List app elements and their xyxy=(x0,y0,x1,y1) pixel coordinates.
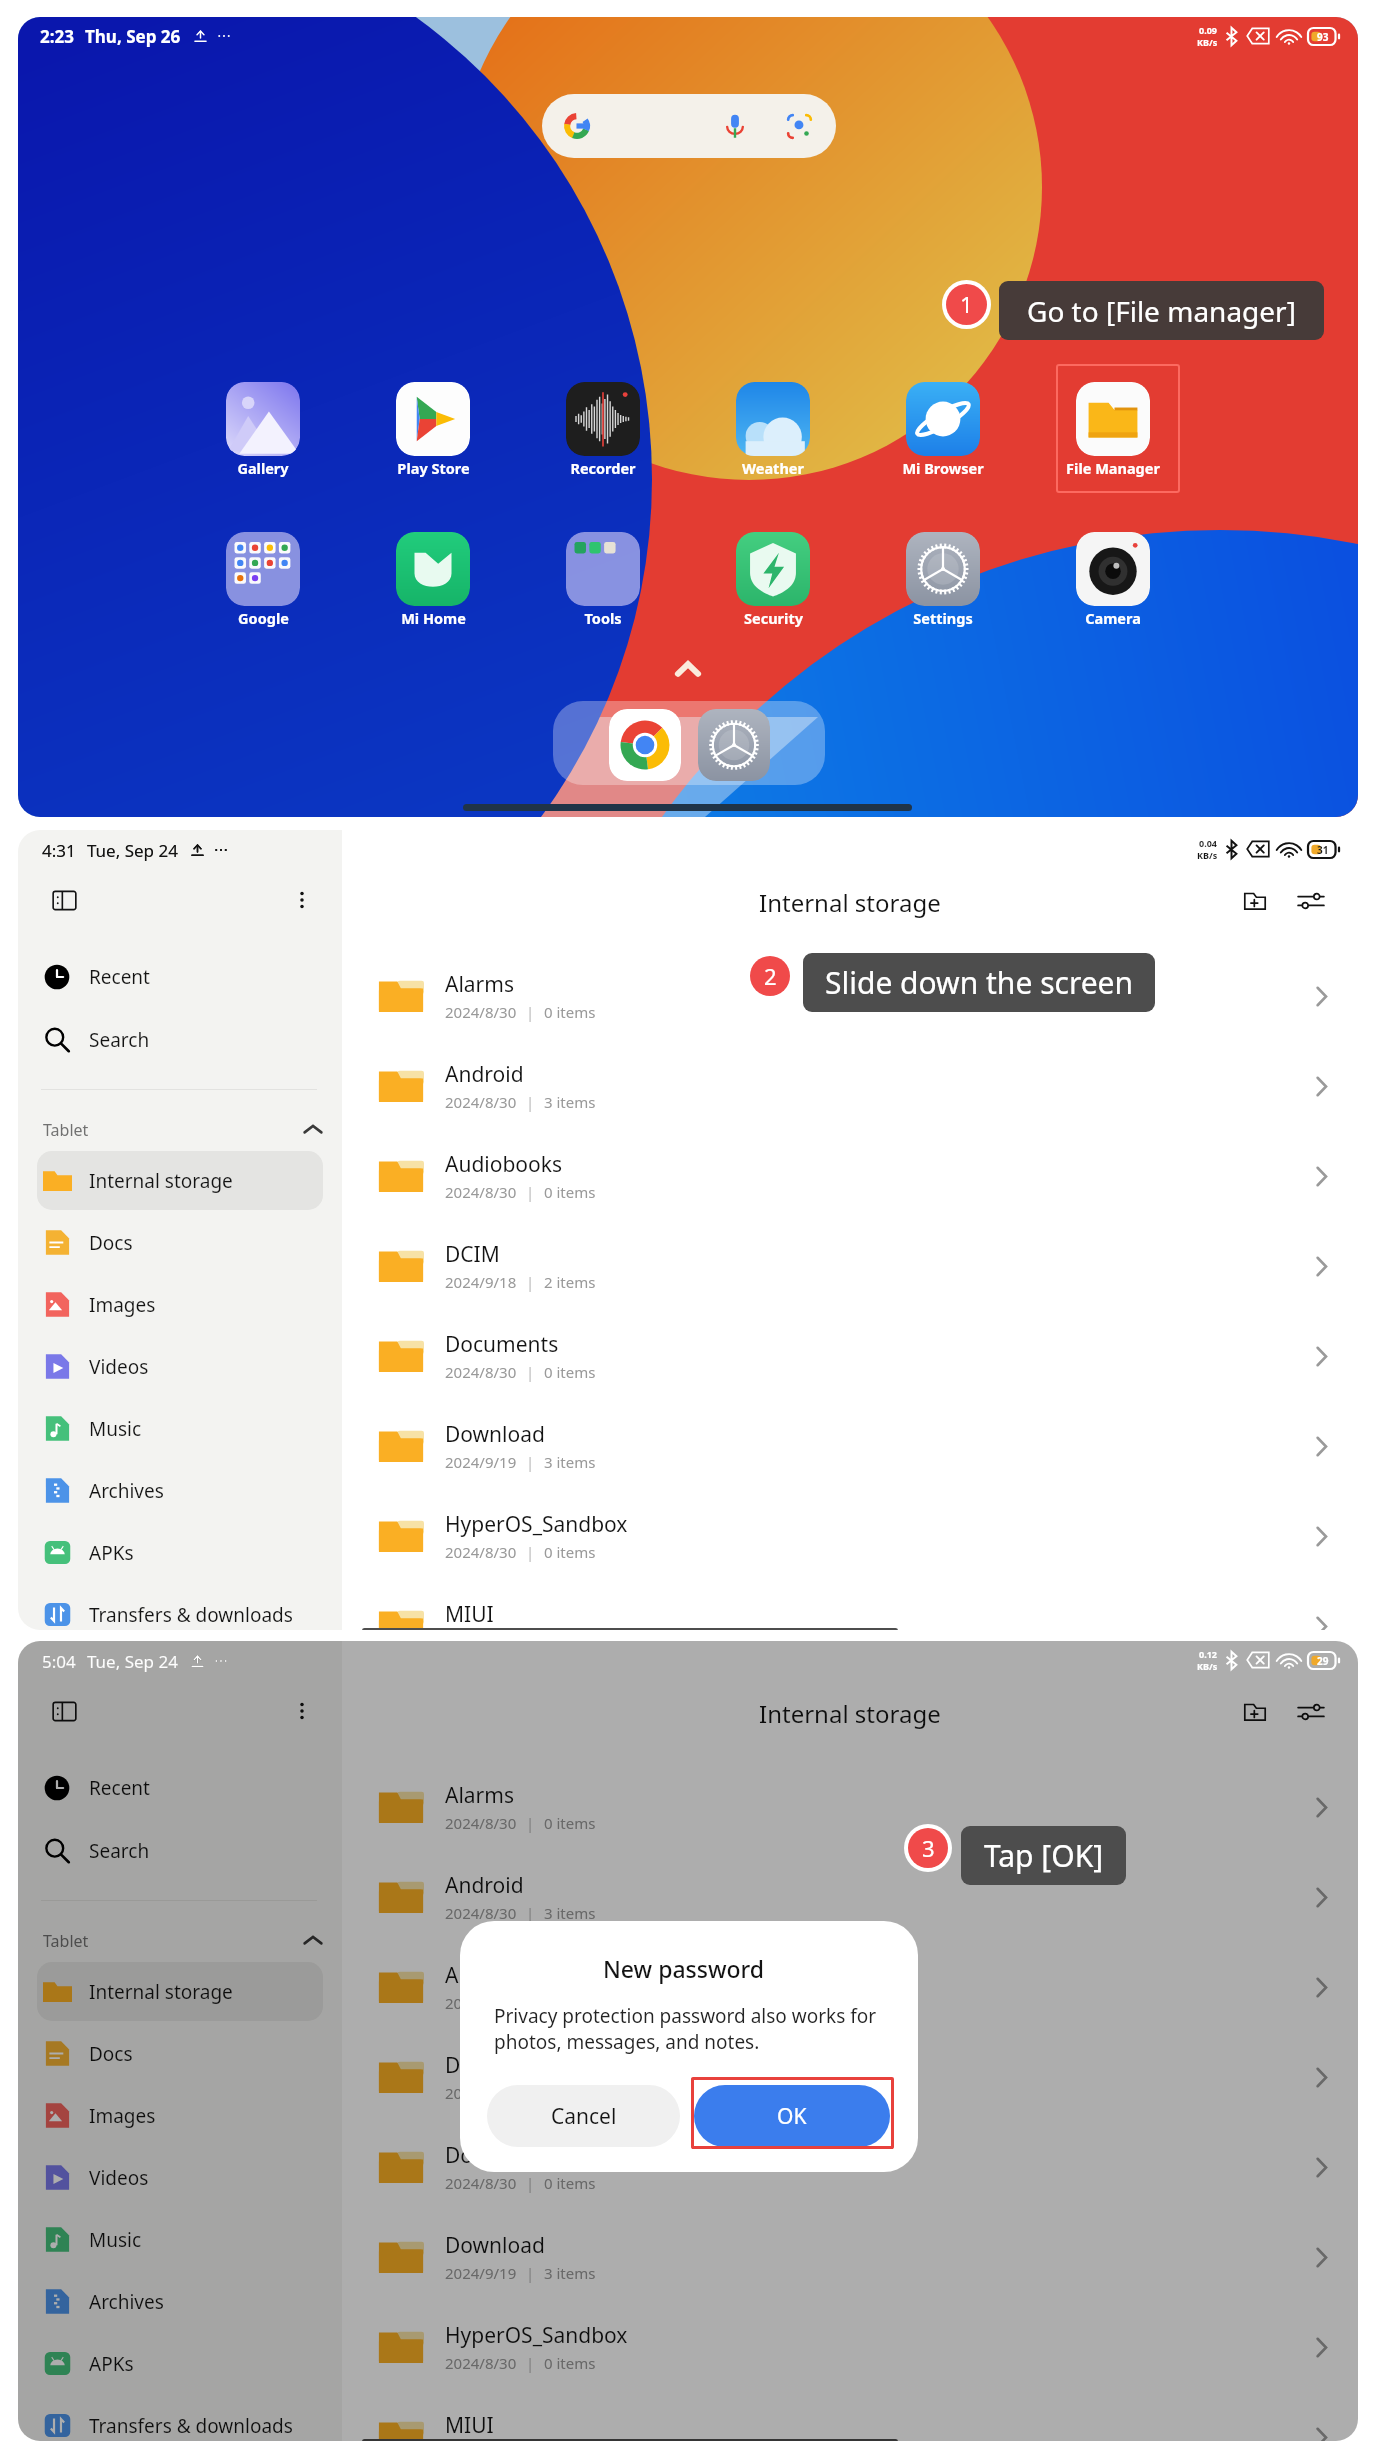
staticText: | xyxy=(526,1813,535,1833)
staticText: 93 xyxy=(1317,30,1329,44)
button[interactable]: Weather xyxy=(718,382,828,478)
button[interactable]: More options xyxy=(280,876,324,924)
button[interactable]: Sort options xyxy=(1287,1688,1335,1736)
staticText: | xyxy=(526,1092,535,1112)
button[interactable]: Internal storage xyxy=(37,1962,323,2021)
button[interactable]: New folder xyxy=(1231,877,1279,925)
button[interactable]: Archives xyxy=(37,2272,323,2331)
button[interactable]: Docs xyxy=(37,2024,323,2083)
button[interactable]: Settings xyxy=(888,532,998,628)
staticText: MIUI xyxy=(445,2411,494,2440)
button[interactable]: Tools xyxy=(548,532,658,628)
button[interactable]: Settings xyxy=(698,709,770,781)
staticText: 2024/9/19 xyxy=(445,2263,517,2283)
button[interactable]: HyperOS_Sandbox xyxy=(342,1491,1358,1581)
staticText: Android xyxy=(445,1060,524,1089)
staticText: KB/s xyxy=(1197,1660,1218,1672)
button[interactable]: Alarms xyxy=(342,951,1358,1041)
button[interactable]: Docs xyxy=(37,1213,323,1272)
staticText: | xyxy=(526,2263,535,2283)
staticText: APKs xyxy=(89,2351,134,2377)
staticText: Archives xyxy=(89,2289,164,2315)
button[interactable]: Alarms xyxy=(342,1762,1358,1852)
staticText: | xyxy=(526,2083,535,2103)
staticText: 2 items xyxy=(544,1272,596,1292)
button[interactable]: OK xyxy=(694,2085,890,2147)
button[interactable]: Download xyxy=(342,1401,1358,1491)
staticText: Android xyxy=(445,1871,524,1900)
button[interactable]: Videos xyxy=(37,1337,323,1396)
button[interactable]: Gallery xyxy=(208,382,318,478)
staticText: 2024/9/18 xyxy=(445,2083,517,2103)
staticText: Mi Browser xyxy=(902,458,984,478)
staticText: DCIM xyxy=(445,2051,500,2080)
button[interactable]: Transfers & downloads xyxy=(37,2396,323,2441)
button[interactable]: Documents xyxy=(342,1311,1358,1401)
button[interactable]: Archives xyxy=(37,1461,323,1520)
button[interactable]: APKs xyxy=(37,2334,323,2393)
button[interactable]: Google xyxy=(208,532,318,628)
button[interactable]: Mi Browser xyxy=(888,382,998,478)
staticText: Music xyxy=(89,2227,142,2253)
staticText: 0 items xyxy=(544,1182,596,1202)
button[interactable]: HyperOS_Sandbox xyxy=(342,2302,1358,2392)
button[interactable]: Audiobooks xyxy=(342,1131,1358,1221)
button[interactable]: Sort options xyxy=(1287,877,1335,925)
staticText: 3 xyxy=(922,1833,935,1863)
staticText: | xyxy=(526,2353,535,2373)
staticText: 4:31 xyxy=(42,839,76,862)
button[interactable]: Search xyxy=(37,1010,323,1070)
staticText: Internal storage xyxy=(89,1168,233,1194)
button[interactable]: Cancel xyxy=(487,2085,680,2147)
staticText: | xyxy=(526,1182,535,1202)
button[interactable]: DCIM xyxy=(342,2032,1358,2122)
staticText: Tools xyxy=(584,608,622,628)
staticText: 2024/8/30 xyxy=(445,1362,517,1382)
button[interactable]: Play Store xyxy=(378,382,488,478)
button[interactable]: Images xyxy=(37,2086,323,2145)
staticText: 0 items xyxy=(544,2173,596,2193)
button[interactable]: Chrome xyxy=(609,709,681,781)
button[interactable]: Music xyxy=(37,1399,323,1458)
button[interactable]: Images xyxy=(37,1275,323,1334)
button[interactable]: Internal storage xyxy=(37,1151,323,1210)
staticText: File Manager xyxy=(1066,458,1160,478)
button[interactable]: Google search xyxy=(542,94,836,158)
button[interactable]: Audiobooks xyxy=(342,1942,1358,2032)
button[interactable]: Documents xyxy=(342,2122,1358,2212)
button[interactable]: File Manager xyxy=(1058,382,1168,478)
button[interactable]: Toggle sidebar xyxy=(38,1687,90,1735)
button[interactable]: Toggle sidebar xyxy=(38,876,90,924)
button[interactable]: MIUI xyxy=(342,2392,1358,2441)
button[interactable]: Videos xyxy=(37,2148,323,2207)
staticText: Thu, Sep 26 xyxy=(85,25,181,48)
button[interactable]: Mi Home xyxy=(378,532,488,628)
button[interactable]: More options xyxy=(280,1687,324,1735)
staticText: Videos xyxy=(89,1354,149,1380)
staticText: 2024/8/30 xyxy=(445,1002,517,1022)
staticText: | xyxy=(526,1362,535,1382)
staticText: Audiobooks xyxy=(445,1961,563,1990)
staticText: Search xyxy=(89,1027,150,1053)
button[interactable]: Search xyxy=(37,1821,323,1881)
button[interactable]: Recent xyxy=(37,947,323,1007)
button[interactable]: New folder xyxy=(1231,1688,1279,1736)
staticText: | xyxy=(526,1993,535,2013)
button[interactable]: Security xyxy=(718,532,828,628)
button[interactable]: Android xyxy=(342,1852,1358,1942)
button[interactable]: MIUI xyxy=(342,1581,1358,1630)
button[interactable]: Android xyxy=(342,1041,1358,1131)
button[interactable]: Recent xyxy=(37,1758,323,1818)
button[interactable]: Camera xyxy=(1058,532,1168,628)
button[interactable]: Download xyxy=(342,2212,1358,2302)
button[interactable]: Music xyxy=(37,2210,323,2269)
staticText: Transfers & downloads xyxy=(89,2413,293,2439)
staticText: 1 xyxy=(960,289,973,320)
button[interactable]: Transfers & downloads xyxy=(37,1585,323,1630)
button[interactable]: DCIM xyxy=(342,1221,1358,1311)
button[interactable]: APKs xyxy=(37,1523,323,1582)
staticText: 2024/8/30 xyxy=(445,1092,517,1112)
button[interactable]: Recorder xyxy=(548,382,658,478)
staticText: Weather xyxy=(742,458,804,478)
staticText: Download xyxy=(445,1420,545,1449)
